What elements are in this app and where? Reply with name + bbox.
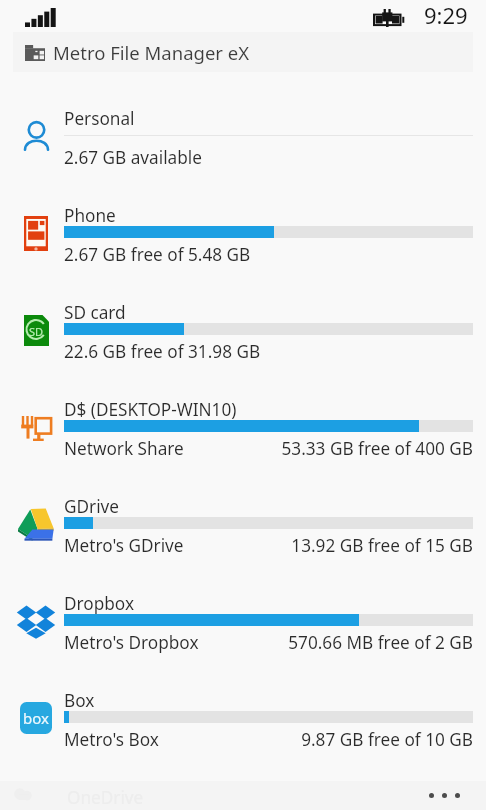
staticText: 9:29 [424,0,468,30]
staticText: 2.67 GB free of 5.48 GB [64,243,251,266]
staticText: SD card [64,301,126,324]
staticText: 570.66 MB free of 2 GB [288,631,473,654]
staticText: SD [29,324,44,339]
staticText: 9.87 GB free of 10 GB [301,728,473,751]
staticText: Metro's GDrive [64,534,184,557]
button[interactable]: SD [0,298,486,395]
staticText: box [23,708,49,728]
staticText: Metro File Manager eX [53,40,250,65]
button[interactable]: Personal [0,104,486,201]
staticText: Metro's Dropbox [64,631,199,654]
button[interactable]: GDrive [0,492,486,589]
staticText: Network Share [64,437,184,460]
staticText: Metro's Box [64,728,159,751]
staticText: Dropbox [64,592,134,615]
button[interactable]: Phone [0,201,486,298]
staticText: Phone [64,204,116,227]
staticText: 2.67 GB available [64,146,202,169]
button[interactable]: Dropbox [0,589,486,686]
staticText: Box [64,689,95,712]
staticText: 22.6 GB free of 31.98 GB [64,340,261,363]
button[interactable]: box [0,686,486,783]
button[interactable]: More options [423,785,466,806]
staticText: Personal [64,107,135,130]
staticText: D$ (DESKTOP-WIN10) [64,398,237,421]
staticText: 13.92 GB free of 15 GB [291,534,473,557]
button[interactable]: Metro File Manager eX [13,32,473,72]
staticText: 53.33 GB free of 400 GB [281,437,473,460]
button[interactable]: D$ (DESKTOP-WIN10) [0,395,486,492]
staticText: GDrive [64,495,120,518]
